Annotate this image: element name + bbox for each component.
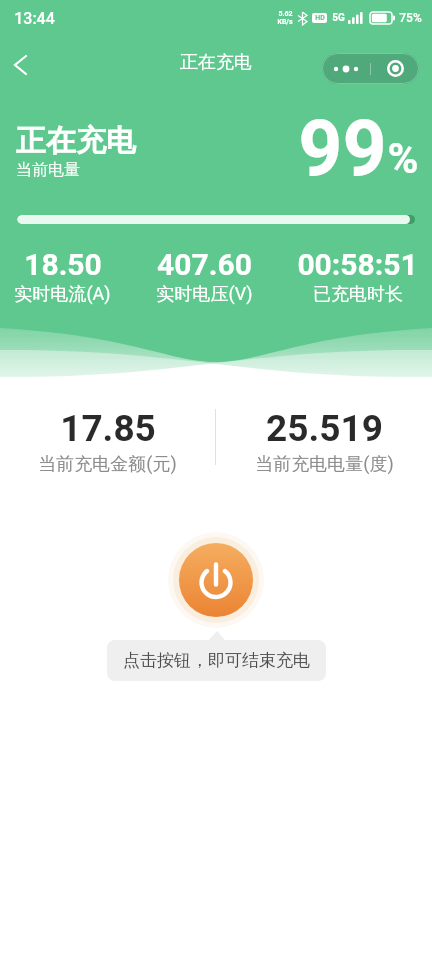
staticText: 正在充电 (16, 122, 136, 160)
staticText: 当前充电金额(元) (38, 453, 177, 476)
staticText: 99 (298, 105, 387, 195)
staticText: KB/s (277, 18, 293, 26)
staticText: 25.519 (266, 407, 383, 450)
staticText: % (387, 134, 419, 183)
button[interactable] (322, 53, 370, 84)
staticText: 75% (399, 11, 422, 25)
staticText: HD (315, 14, 325, 22)
staticText: 实时电压(V) (156, 283, 253, 306)
staticText: 13:44 (14, 9, 55, 28)
staticText: 当前充电电量(度) (255, 453, 394, 476)
staticText: 当前电量 (16, 160, 80, 180)
button[interactable] (168, 532, 264, 628)
staticText: 5G (332, 12, 345, 24)
button[interactable] (4, 49, 36, 81)
staticText: 17.85 (60, 407, 156, 450)
staticText: 已充电时长 (313, 283, 403, 306)
staticText: 5.62 (278, 10, 293, 18)
staticText: 正在充电 (180, 51, 252, 74)
button[interactable] (371, 53, 419, 84)
staticText: 18.50 (24, 247, 102, 282)
staticText: 实时电流(A) (14, 283, 111, 306)
staticText: 407.60 (157, 247, 252, 282)
staticText: 点击按钮，即可结束充电 (123, 650, 310, 671)
staticText: 00:58:51 (297, 247, 418, 282)
button[interactable]: 点击按钮，即可结束充电 (107, 640, 326, 681)
